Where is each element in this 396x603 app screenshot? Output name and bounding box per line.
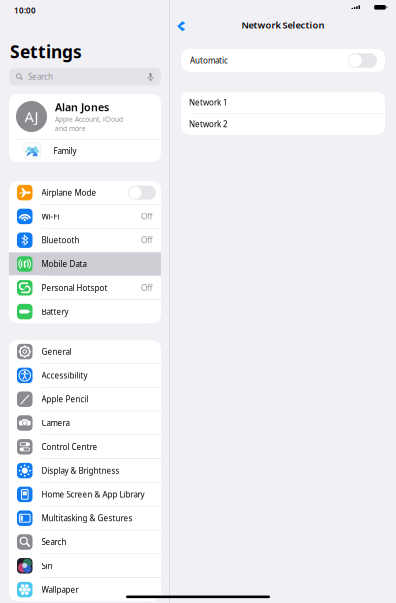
button[interactable]: Bluetooth	[9, 229, 161, 252]
staticText: AJ	[24, 107, 38, 126]
staticText: Off	[141, 211, 153, 222]
staticText: Apple Account, iCloud	[55, 115, 123, 124]
staticText: Personal Hotspot	[41, 282, 107, 293]
staticText: Siri	[41, 560, 52, 571]
staticText: Airplane Mode	[41, 187, 96, 198]
button[interactable]: General	[9, 340, 161, 363]
button[interactable]: Display & Brightness	[9, 459, 161, 482]
button[interactable]: Apple Pencil	[9, 388, 161, 411]
button[interactable]: Wallpaper	[9, 578, 161, 601]
staticText: 10:00	[14, 5, 36, 16]
staticText: Camera	[41, 418, 69, 428]
staticText: Search	[41, 537, 66, 547]
staticText: Battery	[41, 306, 68, 317]
button[interactable]: Personal Hotspot	[9, 276, 161, 299]
staticText: Search	[28, 71, 53, 82]
button[interactable]: Camera	[9, 411, 161, 435]
staticText: Home Screen & App Library	[41, 489, 144, 500]
staticText: Bluetooth	[41, 235, 79, 245]
staticText: Family	[53, 145, 76, 156]
button[interactable]: Battery	[9, 300, 161, 323]
staticText: Network Selection	[241, 19, 324, 31]
button[interactable]: Automatic	[181, 49, 385, 72]
button[interactable]: Home Screen & App Library	[9, 483, 161, 506]
staticText: General	[41, 346, 71, 357]
button[interactable]: Control Centre	[9, 435, 161, 458]
button[interactable]: AJ	[9, 94, 161, 139]
staticText: Apple Pencil	[41, 394, 88, 404]
button[interactable]: Back	[171, 16, 191, 36]
staticText: Off	[141, 282, 153, 293]
button[interactable]: Network 1	[181, 92, 385, 113]
button[interactable]: Mobile Data	[9, 252, 161, 276]
staticText: Control Centre	[41, 441, 97, 452]
staticText: Network 2	[189, 119, 228, 129]
staticText: Mobile Data	[41, 259, 86, 269]
staticText: Network 1	[189, 97, 228, 108]
staticText: Automatic	[190, 55, 228, 66]
button[interactable]: Airplane Mode	[9, 181, 161, 204]
staticText: Off	[141, 235, 153, 245]
staticText: Wi-Fi	[41, 211, 59, 222]
staticText: Alan Jones	[55, 100, 109, 114]
staticText: and more	[55, 124, 86, 133]
button[interactable]: Multitasking & Gestures	[9, 507, 161, 530]
button[interactable]: Search	[9, 530, 161, 554]
staticText: Settings	[10, 40, 82, 63]
button[interactable]: Wi-Fi	[9, 205, 161, 228]
button[interactable]: Accessibility	[9, 364, 161, 387]
button[interactable]: Siri	[9, 554, 161, 577]
staticText: Display & Brightness	[41, 465, 119, 476]
button[interactable]: Network 2	[181, 114, 385, 135]
staticText: Multitasking & Gestures	[41, 513, 132, 523]
staticText: Accessibility	[41, 370, 87, 381]
staticText: Wallpaper	[41, 584, 78, 595]
button[interactable]: Family	[9, 140, 161, 162]
